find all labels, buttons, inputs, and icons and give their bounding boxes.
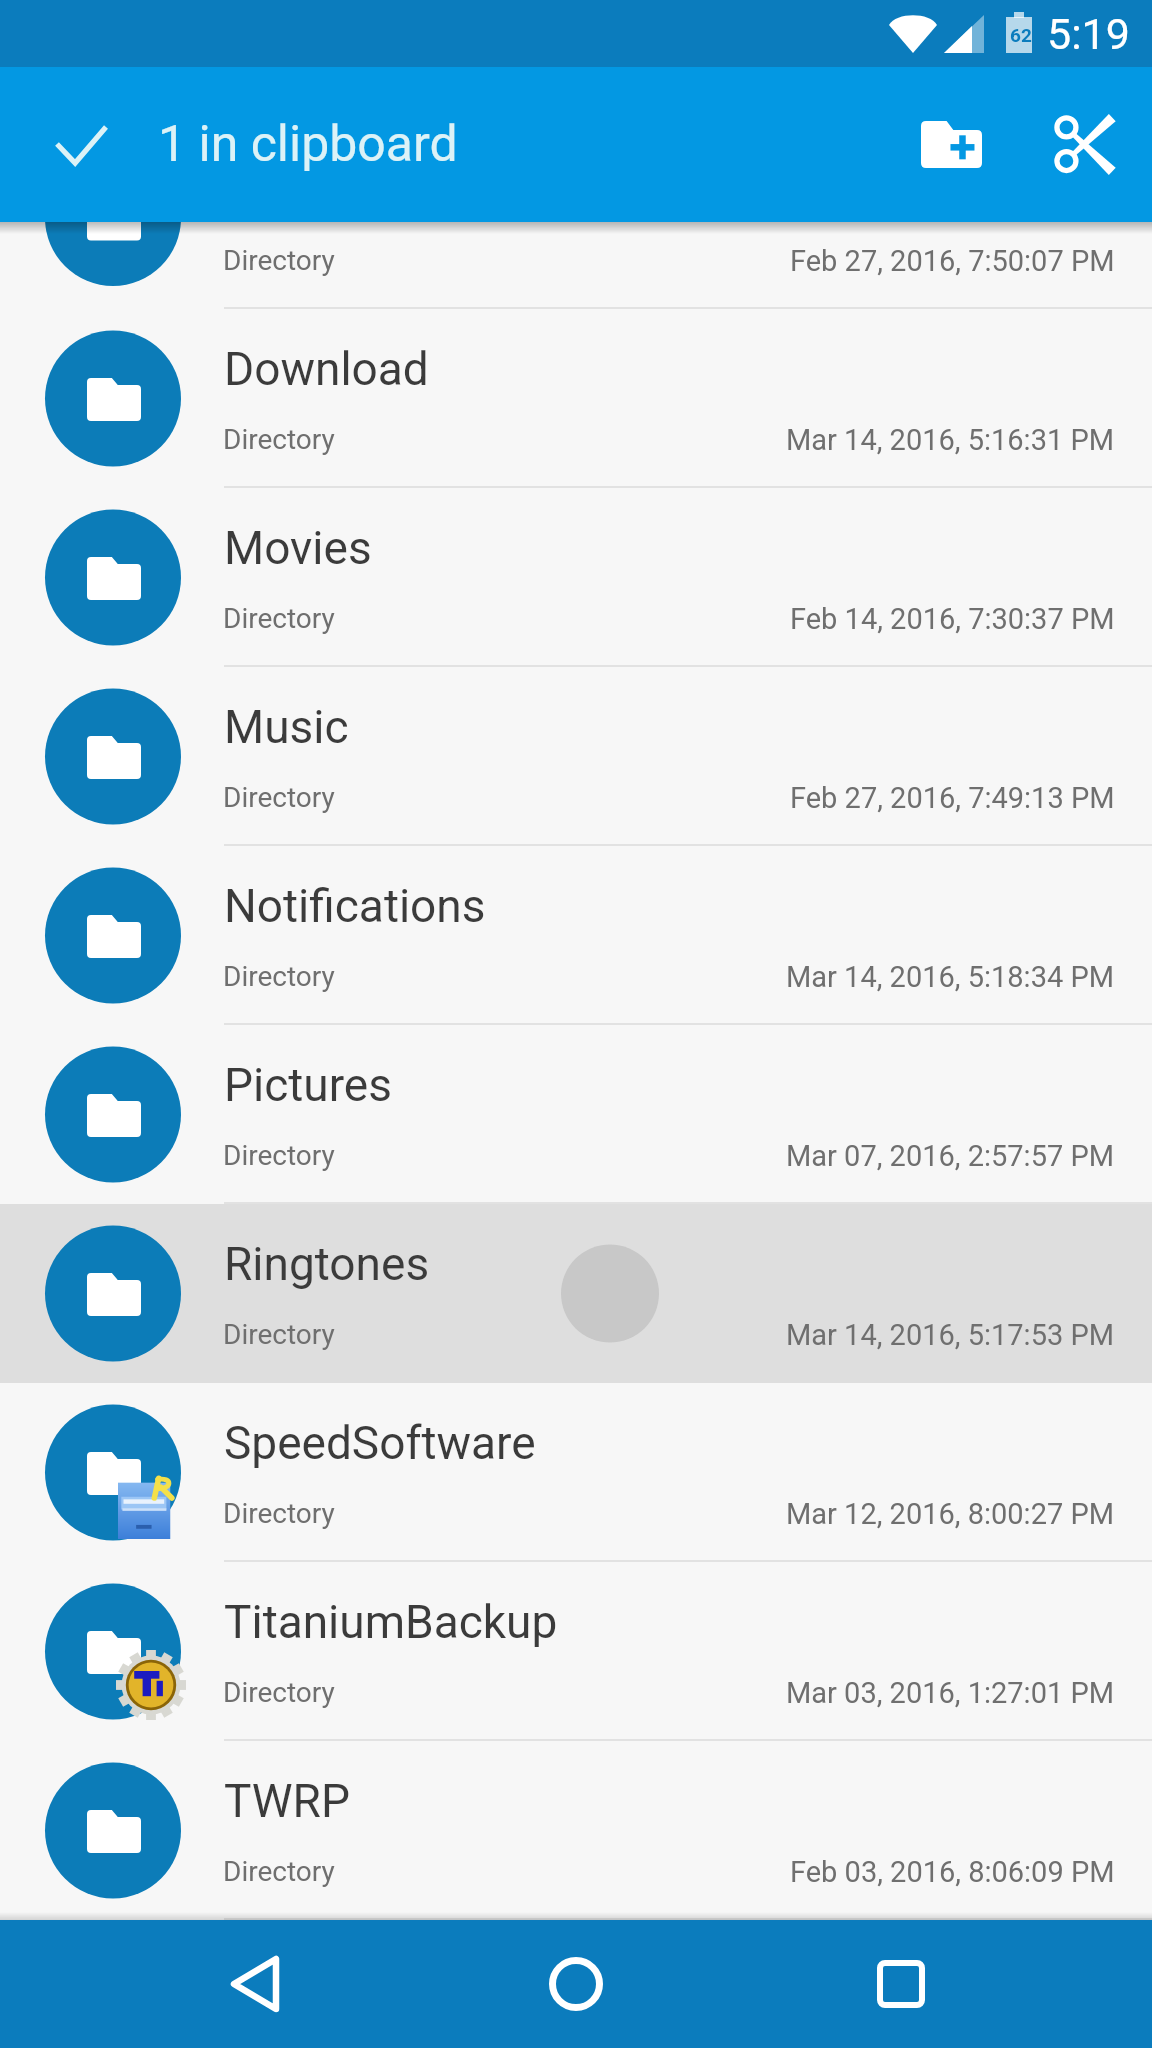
staticText: 1 in clipboard bbox=[158, 115, 458, 174]
button[interactable]: Movies bbox=[0, 488, 1152, 667]
button[interactable]: Back bbox=[165, 1920, 345, 2048]
staticText: Directory bbox=[223, 781, 335, 814]
staticText: Directory bbox=[223, 1318, 335, 1351]
staticText: Directory bbox=[223, 602, 335, 635]
staticText: TitaniumBackup bbox=[224, 1595, 558, 1649]
staticText: Music bbox=[224, 700, 349, 754]
button[interactable]: Home bbox=[486, 1920, 666, 2048]
staticText: Pictures bbox=[224, 1058, 392, 1112]
staticText: Feb 27, 2016, 7:50:07 PM bbox=[790, 244, 1115, 278]
button[interactable]: Cut bbox=[1018, 67, 1152, 222]
staticText: Mar 07, 2016, 2:57:57 PM bbox=[786, 1139, 1115, 1173]
staticText: Directory bbox=[223, 244, 335, 277]
button[interactable]: Pictures bbox=[0, 1025, 1152, 1204]
button[interactable]: SpeedSoftware bbox=[0, 1383, 1152, 1562]
staticText: Mar 14, 2016, 5:17:53 PM bbox=[786, 1318, 1115, 1352]
staticText: 62 bbox=[1010, 24, 1032, 46]
staticText: Directory bbox=[223, 1497, 335, 1530]
staticText: Mar 03, 2016, 1:27:01 PM bbox=[786, 1676, 1115, 1710]
button[interactable]: Notifications bbox=[0, 846, 1152, 1025]
staticText: Directory bbox=[223, 960, 335, 993]
staticText: Ringtones bbox=[224, 1237, 430, 1291]
staticText: Notifications bbox=[224, 879, 486, 933]
button[interactable]: Ringtones bbox=[0, 1204, 1152, 1383]
button[interactable]: Music bbox=[0, 667, 1152, 846]
staticText: Feb 03, 2016, 8:06:09 PM bbox=[790, 1855, 1115, 1889]
staticText: Mar 14, 2016, 5:18:34 PM bbox=[786, 960, 1115, 994]
staticText: Directory bbox=[223, 1855, 335, 1888]
staticText: 5:19 bbox=[1047, 9, 1130, 59]
staticText: Mar 12, 2016, 8:00:27 PM bbox=[786, 1497, 1115, 1531]
button[interactable]: TWRP bbox=[0, 1741, 1152, 1920]
button[interactable]: Download bbox=[0, 309, 1152, 488]
staticText: Feb 27, 2016, 7:49:13 PM bbox=[790, 781, 1115, 815]
staticText: Directory bbox=[223, 1676, 335, 1709]
staticText: Mar 14, 2016, 5:16:31 PM bbox=[786, 423, 1115, 457]
button[interactable]: Directory bbox=[0, 222, 1152, 309]
staticText: Feb 14, 2016, 7:30:37 PM bbox=[790, 602, 1115, 636]
button[interactable]: Recent apps bbox=[811, 1920, 991, 2048]
staticText: Directory bbox=[223, 423, 335, 456]
button[interactable]: TitaniumBackup bbox=[0, 1562, 1152, 1741]
staticText: Directory bbox=[223, 1139, 335, 1172]
staticText: Movies bbox=[224, 521, 372, 575]
button[interactable]: New folder bbox=[884, 67, 1018, 222]
staticText: Download bbox=[224, 342, 429, 396]
staticText: TWRP bbox=[224, 1774, 350, 1828]
button[interactable]: Done bbox=[0, 67, 163, 222]
staticText: SpeedSoftware bbox=[224, 1416, 536, 1470]
